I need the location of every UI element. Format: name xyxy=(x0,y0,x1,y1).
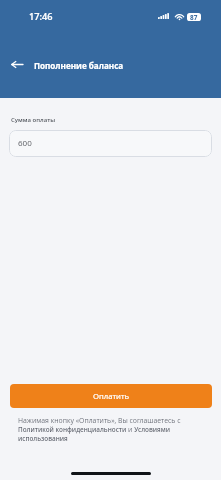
staticText: Оплатить xyxy=(93,391,130,401)
button[interactable]: Back xyxy=(5,54,29,74)
staticText: Нажимая кнопку «Оплатить», Вы соглашаете… xyxy=(18,416,194,443)
staticText: 17:46 xyxy=(29,10,53,23)
staticText: Сумма оплаты xyxy=(11,116,56,124)
staticText: Пополнение баланса xyxy=(34,60,124,71)
staticText: 87 xyxy=(190,13,198,21)
button[interactable]: Оплатить xyxy=(10,384,212,408)
button[interactable]: 600 xyxy=(9,130,212,157)
staticText: 600 xyxy=(18,137,32,148)
